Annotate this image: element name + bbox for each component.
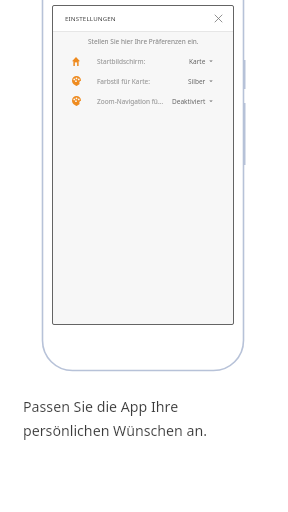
button[interactable]: Zoom-Navigation fü…	[52, 91, 234, 111]
button[interactable]: Farbstil für Karte:	[52, 71, 234, 91]
staticText: Silber	[188, 77, 206, 86]
staticText: Startbildschirm:	[97, 57, 146, 66]
staticText: EINSTELLUNGEN	[65, 14, 116, 22]
staticText: Karte	[189, 57, 206, 66]
staticText: Stellen Sie hier Ihre Präferenzen ein.	[88, 37, 199, 46]
staticText: Farbstil für Karte:	[97, 77, 150, 86]
staticText: Deaktiviert	[172, 97, 206, 106]
staticText: Zoom-Navigation fü…	[97, 97, 164, 106]
button[interactable]: Schließen	[211, 11, 225, 25]
button[interactable]: Startbildschirm:	[52, 51, 234, 71]
staticText: Passen Sie die App Ihre	[23, 397, 179, 416]
staticText: persönlichen Wünschen an.	[23, 421, 208, 440]
